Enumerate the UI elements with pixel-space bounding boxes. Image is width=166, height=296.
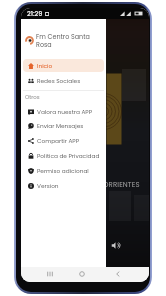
- button[interactable]: Valora nuestra APP: [23, 105, 104, 118]
- staticText: Inicio: [37, 62, 53, 70]
- staticText: Permiso adicional: [37, 167, 89, 175]
- button[interactable]: Inicio: [23, 59, 104, 72]
- button[interactable]: Home: [76, 268, 88, 280]
- staticText: ORRIENTES: [103, 180, 140, 190]
- button[interactable]: Politica de Privacidad: [23, 149, 104, 162]
- button[interactable]: Permiso adicional: [23, 164, 104, 177]
- staticText: Fm Centro Santa Rosa: [36, 32, 90, 49]
- staticText: Politica de Privacidad: [37, 152, 100, 160]
- staticText: Version: [37, 182, 59, 190]
- staticText: 21:29: [27, 9, 43, 18]
- button[interactable]: Redes Sociales: [23, 74, 104, 87]
- button[interactable]: Volume: [111, 241, 120, 250]
- staticText: Enviar Mensajes: [37, 122, 84, 130]
- button[interactable]: Compartir APP: [23, 134, 104, 147]
- staticText: Valora nuestra APP: [37, 108, 93, 116]
- button[interactable]: Enviar Mensajes: [23, 119, 104, 132]
- button[interactable]: Version: [23, 179, 104, 192]
- staticText: Otros: [25, 93, 40, 101]
- staticText: Redes Sociales: [37, 77, 81, 85]
- button[interactable]: Recents: [44, 268, 56, 280]
- button[interactable]: Back: [112, 268, 124, 280]
- staticText: Compartir APP: [37, 137, 80, 145]
